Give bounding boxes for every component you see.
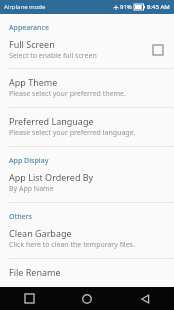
staticText: App Display bbox=[9, 156, 49, 166]
staticText: Appearance bbox=[9, 23, 49, 33]
staticText: Preferred Language bbox=[9, 115, 94, 127]
staticText: Full Screen bbox=[9, 38, 55, 50]
button[interactable]: Clean Garbage bbox=[0, 225, 174, 258]
staticText: Others bbox=[9, 212, 32, 222]
button[interactable]: Preferred Language bbox=[0, 108, 174, 146]
staticText: App Theme bbox=[9, 76, 58, 88]
staticText: 91% bbox=[120, 3, 132, 11]
staticText: App List Ordered By bbox=[9, 171, 94, 183]
staticText: Select to enable full screen bbox=[9, 51, 97, 61]
staticText: File Rename bbox=[9, 266, 61, 278]
staticText: Please select your preferred theme. bbox=[9, 89, 126, 99]
button[interactable]: Home bbox=[58, 287, 116, 310]
staticText: Clean Garbage bbox=[9, 227, 72, 239]
button[interactable]: Recent apps bbox=[0, 287, 58, 310]
button[interactable]: File Rename bbox=[0, 259, 174, 287]
button[interactable]: App List Ordered By bbox=[0, 169, 174, 202]
staticText: 8:45 AM bbox=[147, 3, 170, 11]
staticText: Click here to clean the temporary files. bbox=[9, 240, 135, 250]
button[interactable]: Back bbox=[116, 287, 174, 310]
staticText: By App Name bbox=[9, 184, 54, 194]
button[interactable]: App Theme bbox=[0, 69, 174, 107]
staticText: Airplane mode bbox=[4, 3, 46, 11]
button[interactable]: Full Screen toggle bbox=[151, 43, 165, 57]
staticText: Please select your preferred language. bbox=[9, 128, 136, 138]
button[interactable]: Full Screen bbox=[0, 36, 174, 68]
